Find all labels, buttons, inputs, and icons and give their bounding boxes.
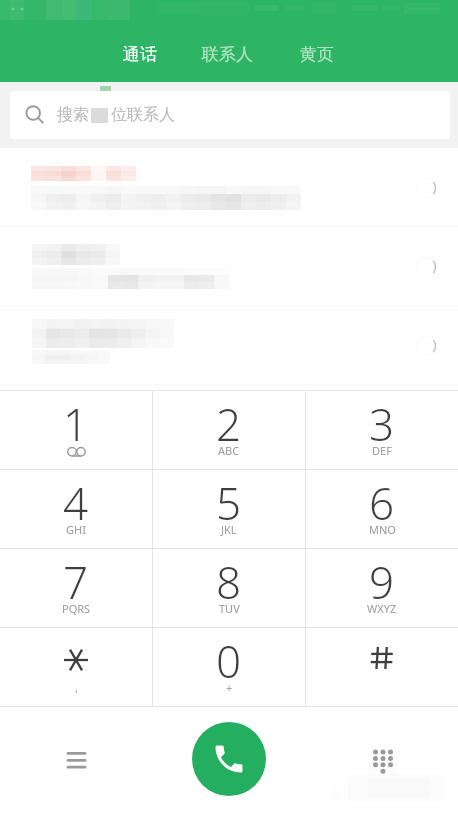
button[interactable]: 通话 [123, 25, 157, 65]
staticText: 7 [63, 552, 89, 612]
staticText: PQRS [62, 601, 91, 616]
staticText: 通话 [123, 44, 157, 65]
staticText: 位联系人 [111, 105, 175, 125]
staticText: + [226, 680, 233, 695]
staticText: 联系人 [202, 44, 253, 65]
staticText: ABC [218, 443, 240, 458]
button[interactable]: Dialpad [360, 738, 405, 783]
button[interactable]: , [0, 628, 152, 706]
button[interactable]: 5 [153, 470, 305, 548]
button[interactable]: Call details [412, 253, 440, 281]
button[interactable]: Call details [412, 332, 440, 360]
button[interactable]: 4 [0, 470, 152, 548]
staticText: 6 [369, 473, 395, 533]
staticText: 9 [369, 552, 395, 612]
staticText: DEF [372, 443, 392, 458]
button[interactable]: Call [192, 722, 266, 796]
staticText: GHI [66, 522, 86, 537]
button[interactable]: 7 [0, 549, 152, 627]
staticText: 8 [216, 552, 242, 612]
staticText: , [75, 680, 78, 695]
button[interactable]: Call details [412, 174, 440, 202]
staticText: 1 [63, 394, 89, 454]
button[interactable]: 0 [153, 628, 305, 706]
staticText: JKL [221, 522, 237, 537]
staticText: WXYZ [367, 601, 397, 616]
button[interactable]: Call details [0, 306, 458, 385]
staticText: 3 [369, 394, 395, 454]
staticText: 5 [216, 473, 242, 533]
staticText: 黄页 [300, 44, 334, 65]
staticText: MNO [369, 522, 396, 537]
button[interactable]: 黄页 [300, 25, 334, 65]
button[interactable]: 8 [153, 549, 305, 627]
button[interactable]: 2 [153, 391, 305, 469]
staticText: 0 [216, 631, 242, 691]
staticText: TUV [219, 601, 240, 616]
staticText: 4 [63, 473, 89, 533]
button[interactable]: Menu [54, 738, 99, 783]
button[interactable]: Call details [0, 227, 458, 306]
button[interactable]: 3 [306, 391, 458, 469]
button[interactable]: 9 [306, 549, 458, 627]
button[interactable]: Call details [0, 148, 458, 227]
button[interactable]: 6 [306, 470, 458, 548]
button[interactable]: 1 [0, 391, 152, 469]
button[interactable]: 搜索 [10, 91, 450, 139]
staticText: 2 [216, 394, 242, 454]
button[interactable] [306, 628, 458, 706]
staticText: 搜索 [57, 105, 89, 125]
button[interactable]: 联系人 [202, 25, 253, 65]
